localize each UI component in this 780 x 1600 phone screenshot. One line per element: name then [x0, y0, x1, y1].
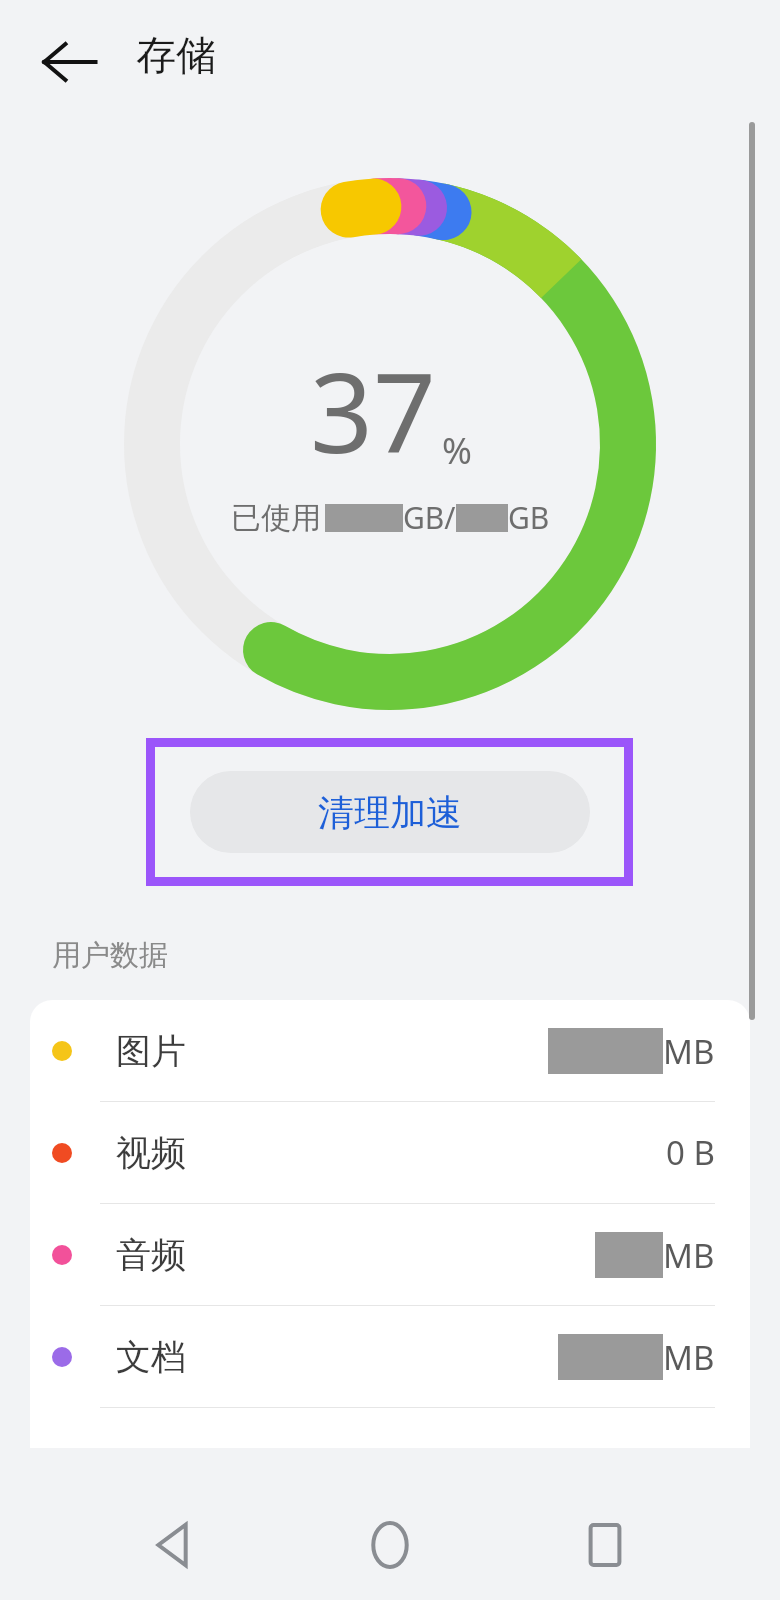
button[interactable]: 清理加速	[190, 771, 590, 853]
button[interactable]: 文档	[30, 1306, 750, 1407]
staticText: 音频	[116, 1233, 186, 1277]
button[interactable]: Back	[137, 1506, 215, 1584]
button[interactable]: Back	[36, 30, 100, 94]
staticText: 视频	[116, 1131, 186, 1175]
button[interactable]: Recent apps	[566, 1506, 644, 1584]
staticText: MB	[663, 1233, 715, 1278]
staticText: 用户数据	[52, 937, 168, 974]
button[interactable]: 图片	[30, 1000, 750, 1101]
staticText: 文档	[116, 1335, 186, 1379]
staticText: 0 B	[666, 1130, 715, 1175]
staticText: 图片	[116, 1029, 186, 1073]
staticText: GB	[508, 497, 550, 538]
button[interactable]: Home	[351, 1506, 429, 1584]
button[interactable]: 视频	[30, 1102, 750, 1203]
staticText: 存储	[136, 30, 216, 80]
staticText: 已使用	[231, 499, 321, 537]
staticText: 清理加速	[318, 790, 462, 835]
button[interactable]: 音频	[30, 1204, 750, 1305]
staticText: %	[442, 426, 472, 475]
staticText: 37	[310, 335, 436, 485]
staticText: MB	[663, 1335, 715, 1380]
staticText: GB/	[403, 497, 456, 538]
staticText: MB	[663, 1029, 715, 1074]
